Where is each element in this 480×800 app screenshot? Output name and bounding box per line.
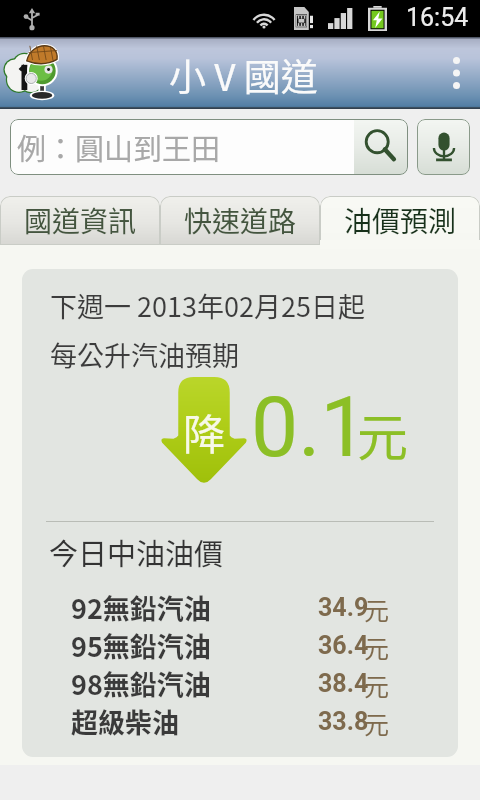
staticText: 元	[364, 591, 390, 627]
button[interactable]: 例：圓山到王田	[10, 119, 408, 175]
staticText: 快速道路	[184, 200, 297, 241]
staticText: 油價預測	[344, 200, 457, 241]
staticText: 元	[357, 397, 409, 471]
staticText: 元	[364, 629, 390, 665]
staticText: 降	[183, 401, 226, 462]
staticText: 16:54	[406, 3, 469, 32]
staticText: 元	[364, 705, 390, 741]
button[interactable]: Voice search	[417, 119, 470, 175]
staticText: 33.8	[318, 707, 369, 736]
staticText: 92無鉛汽油	[71, 588, 211, 626]
button[interactable]: 快速道路	[160, 196, 320, 245]
staticText: 98無鉛汽油	[71, 664, 211, 702]
button[interactable]: 國道資訊	[0, 196, 160, 245]
staticText: 34.9	[318, 593, 369, 622]
staticText: 36.4	[318, 631, 369, 660]
button[interactable]: More options	[432, 37, 480, 109]
staticText: 例：圓山到王田	[17, 126, 354, 168]
button[interactable]: Search	[354, 119, 408, 175]
staticText: 元	[364, 667, 390, 703]
staticText: 國道資訊	[24, 200, 137, 241]
staticText: 超級柴油	[71, 702, 179, 740]
staticText: 0.1	[251, 378, 368, 476]
staticText: 小 V 國道	[169, 48, 318, 102]
staticText: 每公升汽油預期	[50, 335, 239, 374]
staticText: 下週一 2013年02月25日起	[50, 286, 365, 325]
staticText: 95無鉛汽油	[71, 626, 211, 664]
button[interactable]: 油價預測	[320, 196, 480, 245]
staticText: 38.4	[318, 669, 369, 698]
staticText: 今日中油油價	[49, 531, 224, 573]
